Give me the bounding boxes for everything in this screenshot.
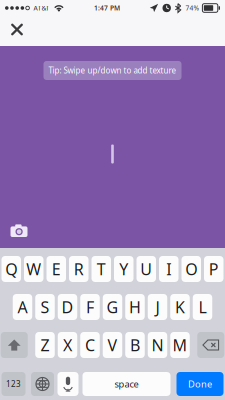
- button[interactable]: X: [58, 332, 77, 358]
- button[interactable]: C: [80, 332, 100, 358]
- button[interactable]: E: [46, 256, 66, 282]
- button[interactable]: I: [159, 256, 178, 282]
- staticText: U: [140, 258, 152, 280]
- button[interactable]: N: [148, 332, 167, 358]
- button[interactable]: Close: [0, 16, 34, 46]
- button[interactable]: D: [58, 294, 77, 320]
- staticText: N: [151, 334, 163, 356]
- staticText: I: [166, 258, 171, 280]
- button[interactable]: U: [136, 256, 156, 282]
- button[interactable]: Z: [35, 332, 55, 358]
- button[interactable]: Delete: [197, 332, 224, 358]
- staticText: 123: [6, 379, 21, 389]
- staticText: C: [85, 334, 95, 356]
- button[interactable]: L: [193, 294, 212, 320]
- staticText: E: [52, 258, 61, 280]
- button[interactable]: M: [170, 332, 190, 358]
- staticText: space: [114, 378, 138, 390]
- staticText: Y: [119, 258, 128, 280]
- button[interactable]: F: [80, 294, 100, 320]
- button[interactable]: P: [204, 256, 223, 282]
- staticText: 74%: [185, 4, 199, 12]
- staticText: Tip: Swipe up/down to add texture: [48, 65, 176, 76]
- button[interactable]: K: [170, 294, 190, 320]
- staticText: H: [129, 296, 141, 318]
- button[interactable]: Next keyboard: [31, 372, 54, 396]
- staticText: A: [17, 296, 27, 318]
- staticText: P: [209, 258, 219, 280]
- staticText: AT&T: [33, 4, 49, 12]
- button[interactable]: T: [91, 256, 111, 282]
- button[interactable]: Q: [1, 256, 21, 282]
- staticText: W: [26, 258, 41, 280]
- staticText: R: [74, 258, 84, 280]
- staticText: J: [155, 296, 159, 318]
- button[interactable]: H: [125, 294, 145, 320]
- staticText: D: [61, 296, 73, 318]
- button[interactable]: Y: [114, 256, 133, 282]
- staticText: X: [63, 334, 72, 356]
- button[interactable]: G: [103, 294, 122, 320]
- button[interactable]: O: [181, 256, 201, 282]
- staticText: T: [97, 258, 106, 280]
- button[interactable]: S: [35, 294, 55, 320]
- staticText: Done: [188, 378, 212, 390]
- staticText: Q: [5, 258, 17, 280]
- staticText: S: [40, 296, 49, 318]
- staticText: M: [172, 334, 187, 356]
- button[interactable]: 123: [1, 372, 25, 396]
- staticText: V: [107, 334, 117, 356]
- staticText: O: [185, 258, 197, 280]
- staticText: F: [86, 296, 94, 318]
- staticText: 1:47 PM: [94, 4, 120, 12]
- button[interactable]: Dictation: [57, 372, 78, 396]
- button[interactable]: R: [69, 256, 88, 282]
- staticText: K: [175, 296, 185, 318]
- button[interactable]: W: [24, 256, 43, 282]
- button[interactable]: Done: [176, 372, 223, 396]
- button[interactable]: B: [125, 332, 145, 358]
- button[interactable]: V: [103, 332, 122, 358]
- staticText: G: [106, 296, 118, 318]
- button[interactable]: Shift: [1, 332, 28, 358]
- button[interactable]: J: [148, 294, 167, 320]
- staticText: B: [130, 334, 140, 356]
- staticText: L: [198, 296, 206, 318]
- button[interactable]: space: [82, 372, 170, 396]
- button[interactable]: A: [13, 294, 32, 320]
- staticText: Z: [40, 334, 49, 356]
- button[interactable]: Camera: [10, 225, 28, 239]
